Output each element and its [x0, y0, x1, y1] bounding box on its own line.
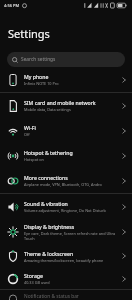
- staticText: More connections: [24, 174, 68, 181]
- staticText: Volume adjustment, Ringtone, Do Not Dist…: [24, 208, 106, 213]
- staticText: Theme & lockscreen: [24, 250, 74, 257]
- staticText: Notification & status bar: [24, 293, 79, 300]
- button[interactable]: Storage: [0, 268, 132, 289]
- button[interactable]: My phone: [0, 67, 132, 92]
- button[interactable]: Search settings: [7, 52, 125, 67]
- button[interactable]: Wi-Fi: [0, 118, 132, 143]
- staticText: Hotspot & tethering: [24, 149, 73, 156]
- staticText: Airplane mode, VPN, Bluetooth, OTG, Andr…: [24, 182, 102, 187]
- staticText: Off: [24, 132, 30, 137]
- staticText: Infinix NOTE 10 Pro: [24, 81, 59, 86]
- staticText: Search settings: [21, 56, 56, 63]
- button[interactable]: Theme & lockscreen: [0, 244, 132, 268]
- button[interactable]: Hotspot & tethering: [0, 143, 132, 168]
- staticText: Sound & vibration: [24, 200, 68, 207]
- staticText: Wi-Fi: [24, 124, 36, 131]
- staticText: Display & brightness: [24, 223, 75, 230]
- staticText: Amazing themes/lockscreen, beautify phon…: [24, 258, 104, 263]
- staticText: Eye care, Dark theme, Screen refresh rat…: [24, 231, 116, 236]
- staticText: My phone: [24, 73, 49, 80]
- staticText: Storage: [24, 272, 43, 279]
- staticText: 40.33 GB used: [24, 280, 50, 285]
- staticText: Mobile data, Data settings: [24, 107, 71, 112]
- button[interactable]: Notification & status bar: [0, 290, 132, 300]
- staticText: SIM card and mobile network: [24, 99, 96, 106]
- button[interactable]: SIM card and mobile network: [0, 93, 132, 118]
- staticText: 4:56 PM: [4, 3, 20, 8]
- button[interactable]: Sound & vibration: [0, 194, 132, 219]
- button[interactable]: Display & brightness: [0, 219, 132, 244]
- staticText: Hotspot on: [24, 157, 44, 162]
- staticText: Touch: [24, 236, 35, 241]
- staticText: Settings: [8, 26, 50, 41]
- button[interactable]: More connections: [0, 168, 132, 193]
